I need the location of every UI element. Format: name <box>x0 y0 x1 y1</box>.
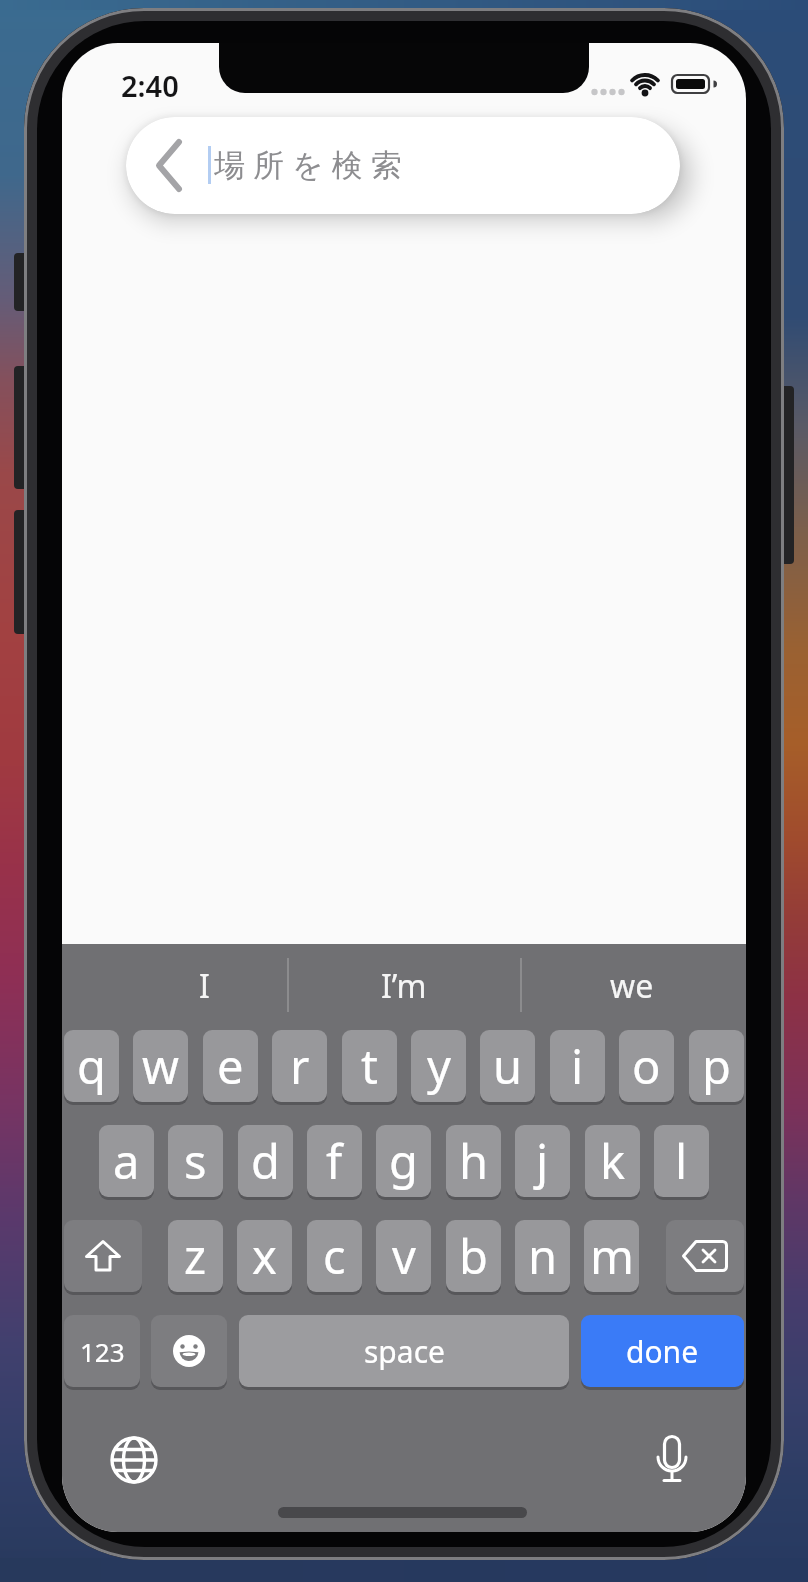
button[interactable]: m <box>584 1220 639 1292</box>
staticText: f <box>326 1129 343 1193</box>
button[interactable]: 123 <box>64 1315 140 1387</box>
button[interactable]: I’m <box>290 944 518 1028</box>
button[interactable]: i <box>550 1030 605 1102</box>
button[interactable]: p <box>689 1030 744 1102</box>
button[interactable] <box>64 1220 142 1292</box>
staticText: I <box>199 964 210 1008</box>
button[interactable]: l <box>654 1125 709 1197</box>
staticText: o <box>632 1034 661 1098</box>
button[interactable]: h <box>446 1125 501 1197</box>
button[interactable]: o <box>619 1030 674 1102</box>
button[interactable]: we <box>518 944 746 1028</box>
staticText: d <box>251 1129 280 1193</box>
staticText: space <box>364 1331 445 1372</box>
staticText: s <box>184 1129 207 1193</box>
staticText: c <box>323 1224 346 1288</box>
button[interactable]: d <box>238 1125 293 1197</box>
staticText: j <box>536 1129 549 1193</box>
button[interactable]: 場所を検索 <box>126 117 680 214</box>
button[interactable]: a <box>99 1125 154 1197</box>
staticText: l <box>675 1129 688 1193</box>
staticText: r <box>290 1034 310 1098</box>
button[interactable]: c <box>307 1220 362 1292</box>
staticText: w <box>142 1034 179 1098</box>
button[interactable]: k <box>585 1125 640 1197</box>
button[interactable]: f <box>307 1125 362 1197</box>
button[interactable]: j <box>515 1125 570 1197</box>
button[interactable]: g <box>376 1125 431 1197</box>
staticText: p <box>702 1034 731 1098</box>
staticText: k <box>600 1129 626 1193</box>
staticText: u <box>493 1034 523 1098</box>
button[interactable]: space <box>239 1315 569 1387</box>
button[interactable]: s <box>168 1125 223 1197</box>
button[interactable]: r <box>272 1030 327 1102</box>
staticText: e <box>217 1034 244 1098</box>
staticText: we <box>610 964 654 1008</box>
button[interactable]: done <box>581 1315 744 1387</box>
button[interactable]: q <box>64 1030 119 1102</box>
button[interactable]: v <box>376 1220 431 1292</box>
button[interactable]: x <box>237 1220 292 1292</box>
staticText: v <box>392 1224 416 1288</box>
staticText: 場所を検索 <box>214 146 410 185</box>
staticText: done <box>626 1331 699 1372</box>
staticText: 123 <box>80 1334 125 1369</box>
staticText: n <box>528 1224 558 1288</box>
button[interactable] <box>110 1436 158 1484</box>
staticText: b <box>459 1224 488 1288</box>
staticText: m <box>590 1224 634 1288</box>
staticText: h <box>459 1129 489 1193</box>
button[interactable] <box>151 1315 227 1387</box>
button[interactable]: t <box>342 1030 397 1102</box>
button[interactable]: y <box>411 1030 466 1102</box>
staticText: x <box>252 1224 277 1288</box>
button[interactable]: u <box>480 1030 535 1102</box>
staticText: I’m <box>381 964 427 1008</box>
staticText: t <box>361 1034 378 1098</box>
staticText: q <box>77 1034 106 1098</box>
button[interactable] <box>650 1435 694 1485</box>
button[interactable]: e <box>203 1030 258 1102</box>
button[interactable]: I <box>147 944 261 1028</box>
staticText: z <box>184 1224 207 1288</box>
button[interactable] <box>666 1220 744 1292</box>
staticText: g <box>389 1129 418 1193</box>
button[interactable]: z <box>168 1220 223 1292</box>
staticText: y <box>427 1034 451 1098</box>
staticText: i <box>571 1034 584 1098</box>
staticText: 2:40 <box>121 66 179 105</box>
button[interactable]: w <box>133 1030 188 1102</box>
button[interactable]: b <box>446 1220 501 1292</box>
button[interactable]: n <box>515 1220 570 1292</box>
staticText: a <box>113 1129 140 1193</box>
